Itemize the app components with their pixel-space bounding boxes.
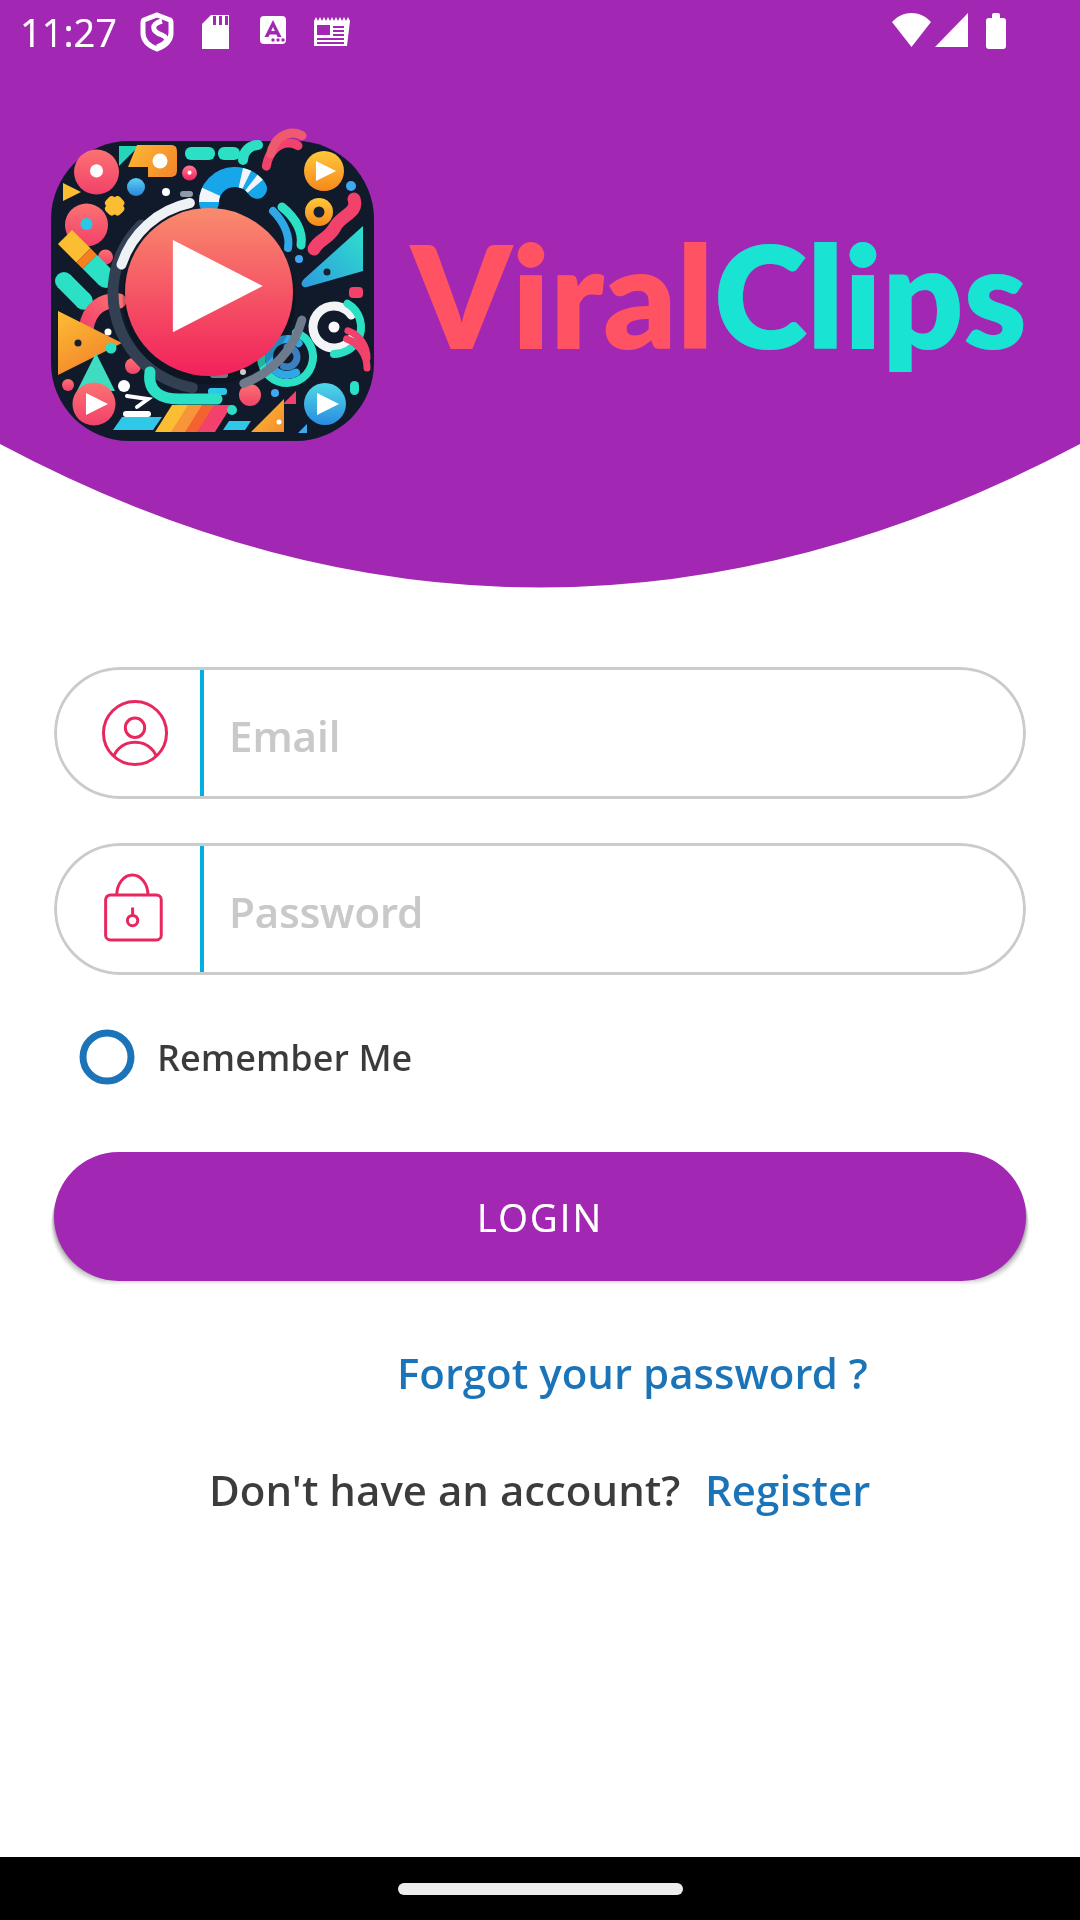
staticText: LOGIN (477, 1191, 604, 1243)
button[interactable]: LOGIN (54, 1152, 1026, 1281)
staticText: Clips (714, 209, 1027, 379)
other: User (95, 693, 175, 773)
staticText: Don't have an account? (209, 1461, 681, 1518)
other: Password (95, 869, 175, 949)
staticText: Email (229, 707, 341, 764)
button[interactable]: Register (705, 1461, 871, 1518)
staticText: Remember Me (157, 1033, 413, 1082)
staticText: 11:27 (20, 6, 118, 58)
button[interactable]: Remember Me (54, 1017, 413, 1097)
button[interactable]: Password (54, 843, 1026, 975)
staticText: Viral (411, 209, 714, 379)
button[interactable]: User (54, 667, 1026, 799)
button[interactable]: Forgot your password ? (397, 1344, 868, 1401)
staticText: Password (229, 883, 424, 940)
